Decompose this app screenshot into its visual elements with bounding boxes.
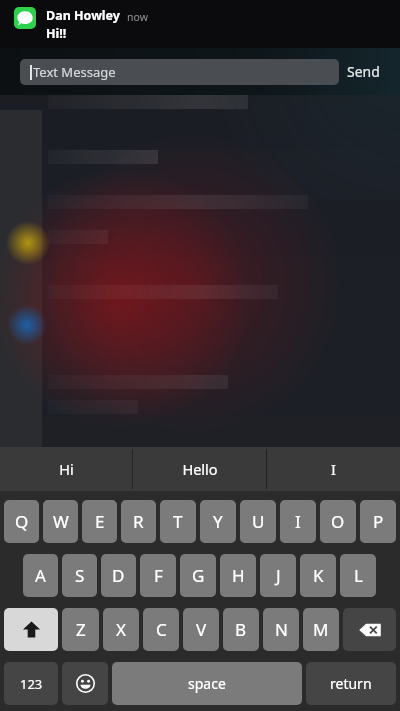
button[interactable]: return [306,662,396,705]
staticText: Hi!! [46,25,67,42]
staticText: K [313,564,324,587]
button[interactable]: Backspace [343,608,396,651]
button[interactable]: K [300,554,336,597]
staticText: now [127,10,148,24]
button[interactable]: Emoji [62,662,108,705]
button[interactable]: Shift [4,608,58,651]
staticText: T [173,510,183,533]
button[interactable]: Text Message [20,59,339,85]
button[interactable]: E [82,500,117,543]
button[interactable]: U [240,500,276,543]
staticText: B [235,618,247,641]
button[interactable]: B [223,608,259,651]
staticText: G [192,564,205,587]
button[interactable]: Hello [133,447,266,491]
button[interactable]: O [320,500,356,543]
staticText: O [331,510,345,533]
button[interactable]: Send [347,62,380,81]
staticText: C [156,618,167,641]
staticText: Hi [59,459,74,479]
button[interactable]: P [360,500,396,543]
button[interactable]: Y [200,500,236,543]
staticText: N [275,618,288,641]
button[interactable]: F [140,554,176,597]
button[interactable]: L [340,554,376,597]
staticText: space [188,674,226,693]
button[interactable]: Q [4,500,39,543]
staticText: Hello [182,459,218,479]
button[interactable]: G [180,554,216,597]
button[interactable]: A [23,554,58,597]
staticText: F [154,564,163,587]
staticText: E [95,510,105,533]
button[interactable]: C [143,608,179,651]
staticText: return [330,674,372,693]
staticText: Q [15,510,29,533]
button[interactable]: V [183,608,219,651]
staticText: P [373,510,384,533]
staticText: Z [76,618,86,641]
staticText: I [295,510,301,533]
staticText: X [116,618,126,641]
button[interactable]: J [260,554,296,597]
staticText: S [75,564,85,587]
button[interactable]: N [263,608,299,651]
button[interactable]: X [103,608,139,651]
staticText: V [196,618,207,641]
button[interactable]: D [101,554,136,597]
button[interactable]: H [220,554,256,597]
staticText: R [133,510,144,533]
staticText: 123 [20,675,43,693]
staticText: M [313,618,329,641]
staticText: W [53,510,69,533]
button[interactable]: Z [62,608,99,651]
staticText: L [354,564,363,587]
button[interactable]: 123 [4,662,58,705]
button[interactable]: T [160,500,196,543]
button[interactable]: M [303,608,339,651]
staticText: U [252,510,265,533]
button[interactable]: I [280,500,316,543]
staticText: J [276,564,281,587]
staticText: H [232,564,245,587]
staticText: A [35,564,46,587]
button[interactable]: Dan Howley [0,0,400,48]
button[interactable]: W [43,500,78,543]
button[interactable]: space [112,662,302,705]
staticText: D [112,564,125,587]
button[interactable]: R [121,500,156,543]
button[interactable]: S [62,554,97,597]
staticText: Y [213,510,223,533]
staticText: Dan Howley [46,7,120,24]
staticText: Text Message [33,63,116,81]
button[interactable]: Hi [0,447,132,491]
staticText: Send [347,62,380,81]
staticText: I [331,459,336,479]
button[interactable]: I [267,447,400,491]
